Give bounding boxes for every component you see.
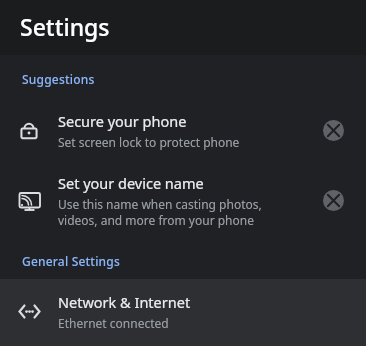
staticText: General Settings xyxy=(22,253,121,269)
button[interactable]: Set your device name xyxy=(0,161,366,239)
button[interactable]: Secure your phone xyxy=(0,99,366,161)
staticText: Secure your phone xyxy=(58,111,187,131)
staticText: Suggestions xyxy=(22,71,95,87)
staticText: Ethernet connected xyxy=(58,315,169,331)
staticText: Use this name when casting photos, video… xyxy=(58,196,262,228)
button[interactable]: Dismiss Set your device name xyxy=(310,177,356,223)
button[interactable]: Dismiss Secure your phone xyxy=(310,107,356,153)
staticText: Set your device name xyxy=(58,173,204,193)
staticText: Settings xyxy=(20,11,110,42)
staticText: Network & Internet xyxy=(58,292,191,312)
staticText: Set screen lock to protect phone xyxy=(58,134,240,150)
button[interactable]: Network & Internet xyxy=(0,279,366,343)
